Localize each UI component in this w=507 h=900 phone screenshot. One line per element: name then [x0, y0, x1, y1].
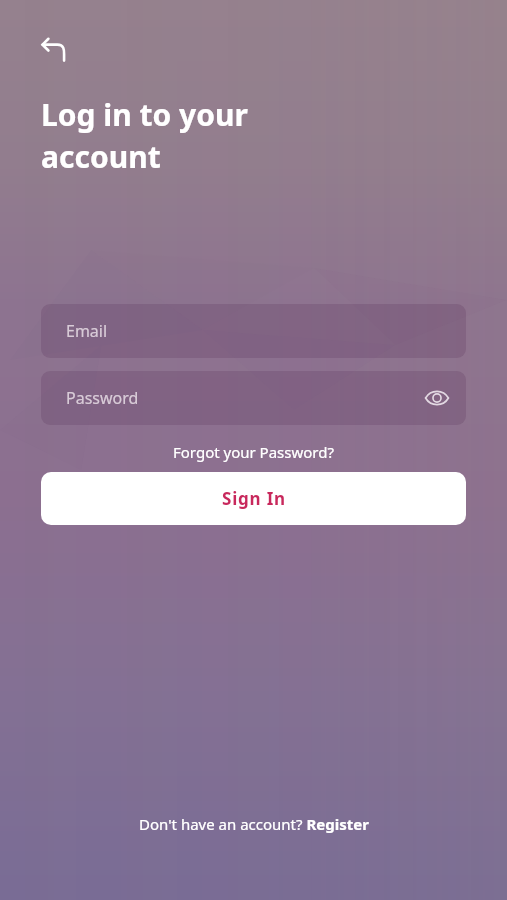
staticText: Password [66, 387, 139, 409]
button[interactable]: Back [32, 26, 76, 70]
button[interactable]: Email [41, 304, 466, 358]
staticText: Forgot your Password? [173, 442, 334, 462]
staticText: Don't have an account? Register [139, 814, 369, 834]
button[interactable]: Show password [416, 377, 458, 419]
button[interactable]: Don't have an account? Register [0, 814, 507, 834]
button[interactable]: Sign In [41, 472, 466, 525]
button[interactable]: Password [41, 371, 466, 425]
button[interactable]: Forgot your Password? [0, 442, 507, 462]
staticText: Email [66, 320, 108, 342]
staticText: Sign In [222, 487, 286, 510]
staticText: Log in to your account [41, 94, 248, 177]
